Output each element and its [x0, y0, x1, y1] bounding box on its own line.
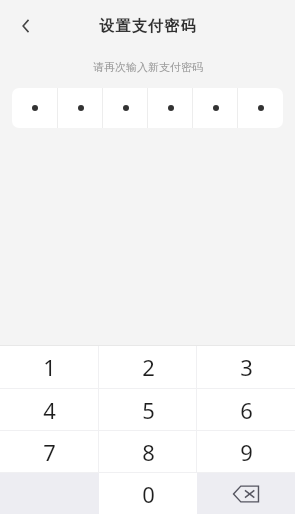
button[interactable]: 0 [99, 473, 197, 514]
button[interactable]: 9 [197, 431, 295, 472]
button[interactable]: 1 [0, 346, 99, 388]
staticText: 请再次输入新支付密码 [93, 60, 203, 74]
button[interactable]: 5 [99, 389, 197, 430]
staticText: 9 [240, 437, 253, 467]
staticText: 8 [142, 437, 155, 467]
button[interactable]: 6 [197, 389, 295, 430]
button[interactable]: Back [8, 8, 44, 44]
staticText: 设置支付密码 [99, 17, 197, 36]
staticText: 4 [43, 395, 56, 425]
staticText: 7 [43, 437, 56, 467]
staticText: 0 [142, 479, 155, 509]
staticText: 1 [43, 352, 56, 382]
staticText: 6 [240, 395, 253, 425]
button[interactable]: 7 [0, 431, 99, 472]
button[interactable]: 4 [0, 389, 99, 430]
button[interactable]: 8 [99, 431, 197, 472]
staticText: 5 [142, 395, 155, 425]
button[interactable] [12, 88, 283, 128]
button[interactable]: Backspace [197, 473, 295, 514]
button[interactable]: 2 [99, 346, 197, 388]
staticText: 2 [142, 352, 155, 382]
button[interactable]: 3 [197, 346, 295, 388]
staticText: 3 [240, 352, 253, 382]
